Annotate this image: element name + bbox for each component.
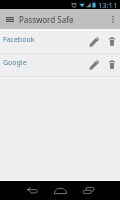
staticText: Facebook xyxy=(3,35,35,45)
button[interactable]: Back xyxy=(18,181,46,200)
button[interactable]: Open navigation drawer xyxy=(0,9,19,29)
button[interactable]: Home xyxy=(46,181,74,200)
button[interactable]: More options xyxy=(106,9,120,29)
button[interactable]: Delete Google xyxy=(104,54,120,76)
button[interactable]: Google xyxy=(0,54,120,76)
button[interactable]: Facebook xyxy=(0,31,120,53)
staticText: Google xyxy=(3,58,27,68)
staticText: 13:11 xyxy=(98,0,118,9)
button[interactable]: Delete Facebook xyxy=(104,31,120,53)
button[interactable]: Recent apps xyxy=(74,181,102,200)
button[interactable]: Edit Google xyxy=(85,54,104,76)
staticText: Password Safe xyxy=(19,14,74,25)
button[interactable]: Edit Facebook xyxy=(85,31,104,53)
